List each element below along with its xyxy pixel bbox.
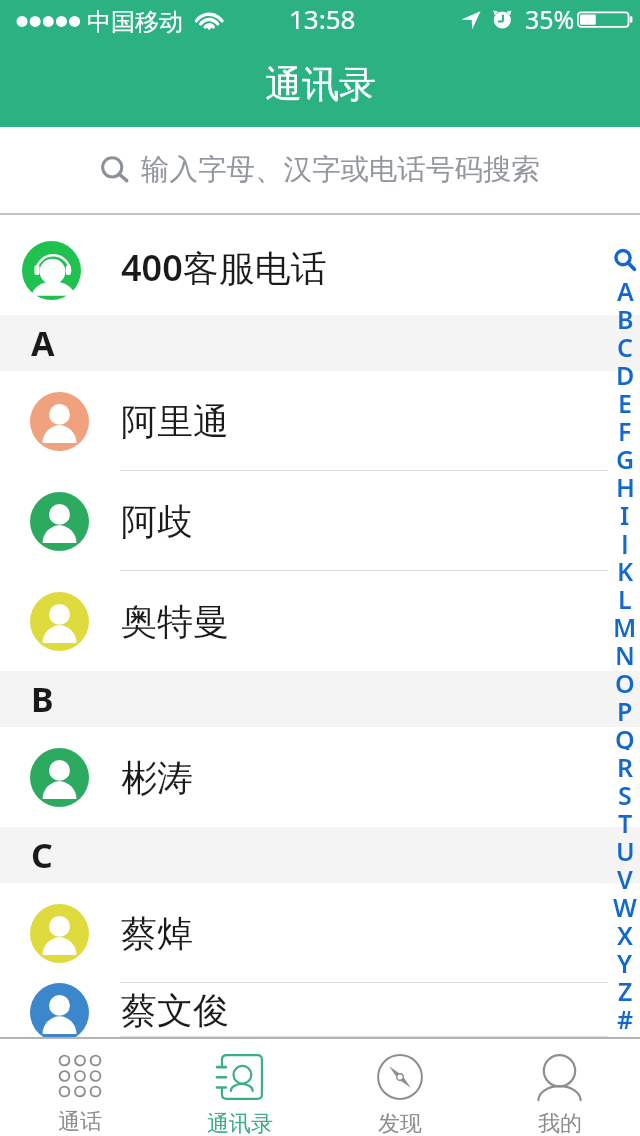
staticText: 阿歧: [121, 499, 193, 544]
staticText: Q: [615, 722, 635, 750]
staticText: 我的: [538, 1110, 582, 1136]
button[interactable]: 通讯录: [160, 1039, 320, 1136]
staticText: P: [617, 694, 633, 722]
staticText: D: [616, 358, 635, 386]
staticText: 发现: [378, 1110, 422, 1136]
staticText: 通话: [58, 1108, 102, 1136]
staticText: G: [616, 442, 635, 470]
staticText: K: [617, 554, 634, 582]
staticText: C: [31, 832, 53, 878]
staticText: 蔡焯: [121, 911, 193, 956]
staticText: 通讯录: [207, 1110, 273, 1136]
staticText: 400客服电话: [121, 243, 327, 292]
button[interactable]: 奥特曼: [0, 571, 640, 671]
staticText: B: [617, 302, 634, 330]
staticText: 蔡文俊: [121, 988, 229, 1033]
staticText: O: [615, 666, 635, 694]
button[interactable]: 我的: [480, 1039, 640, 1136]
staticText: L: [618, 582, 632, 610]
staticText: 输入字母、汉字或电话号码搜索: [141, 152, 540, 188]
staticText: R: [617, 750, 634, 778]
staticText: C: [617, 330, 633, 358]
staticText: 13:58: [289, 1, 356, 36]
staticText: 彬涛: [121, 755, 193, 800]
staticText: W: [613, 890, 637, 918]
staticText: F: [618, 414, 632, 442]
staticText: A: [617, 274, 634, 302]
staticText: Y: [617, 946, 633, 974]
button[interactable]: 蔡文俊: [0, 983, 640, 1037]
button[interactable]: 蔡焯: [0, 883, 640, 983]
staticText: H: [616, 470, 635, 498]
button[interactable]: 阿歧: [0, 471, 640, 571]
staticText: 阿里通: [121, 399, 229, 444]
button[interactable]: 400客服电话: [0, 215, 640, 315]
staticText: B: [31, 676, 54, 722]
staticText: E: [618, 386, 632, 414]
button[interactable]: 输入字母、汉字或电话号码搜索: [0, 127, 640, 213]
staticText: A: [31, 320, 55, 366]
button[interactable]: 发现: [320, 1039, 480, 1136]
staticText: U: [616, 834, 635, 862]
button[interactable]: 通话: [0, 1039, 160, 1136]
staticText: M: [613, 610, 637, 638]
staticText: Z: [618, 974, 633, 1002]
staticText: V: [617, 862, 633, 890]
staticText: 35%: [525, 2, 575, 36]
staticText: J: [621, 526, 629, 554]
staticText: 通讯录: [265, 61, 376, 108]
staticText: N: [615, 638, 635, 666]
button[interactable]: 彬涛: [0, 727, 640, 827]
staticText: X: [617, 918, 633, 946]
staticText: 中国移动: [87, 7, 183, 37]
staticText: S: [618, 778, 632, 806]
staticText: T: [618, 806, 633, 834]
staticText: #: [617, 1002, 634, 1030]
button[interactable]: Alphabet index: [610, 215, 640, 1037]
button[interactable]: 阿里通: [0, 371, 640, 471]
staticText: 奥特曼: [121, 599, 229, 644]
staticText: I: [620, 498, 630, 526]
